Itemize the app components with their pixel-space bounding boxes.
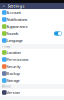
staticText: Backup — [7, 71, 20, 76]
staticText: Language — [7, 38, 23, 43]
button[interactable]: Account — [0, 9, 64, 16]
staticText: Sounds — [7, 31, 19, 36]
button[interactable]: Sounds — [0, 30, 64, 37]
staticText: Location — [7, 50, 21, 55]
staticText: Appearance — [7, 24, 28, 29]
staticText: < — [2, 3, 4, 9]
staticText: Settings — [7, 3, 24, 9]
staticText: Notifications — [7, 17, 28, 22]
staticText: Version — [7, 90, 20, 95]
staticText: Storage — [7, 78, 20, 83]
button[interactable]: Backup — [0, 70, 64, 77]
button[interactable]: Appearance — [0, 23, 64, 30]
staticText: Security — [7, 64, 21, 69]
button[interactable]: Security — [0, 63, 64, 70]
button[interactable]: Storage — [0, 77, 64, 84]
staticText: Privacy — [2, 45, 10, 48]
staticText: Account — [7, 10, 21, 15]
button[interactable]: Back — [1, 3, 5, 9]
staticText: About — [2, 85, 11, 88]
button[interactable]: Language — [0, 37, 64, 44]
button[interactable]: Version — [0, 89, 64, 96]
staticText: Permissions — [7, 57, 29, 62]
button[interactable]: Location — [0, 49, 64, 56]
button[interactable]: Permissions — [0, 56, 64, 63]
button[interactable]: Notifications — [0, 16, 64, 23]
